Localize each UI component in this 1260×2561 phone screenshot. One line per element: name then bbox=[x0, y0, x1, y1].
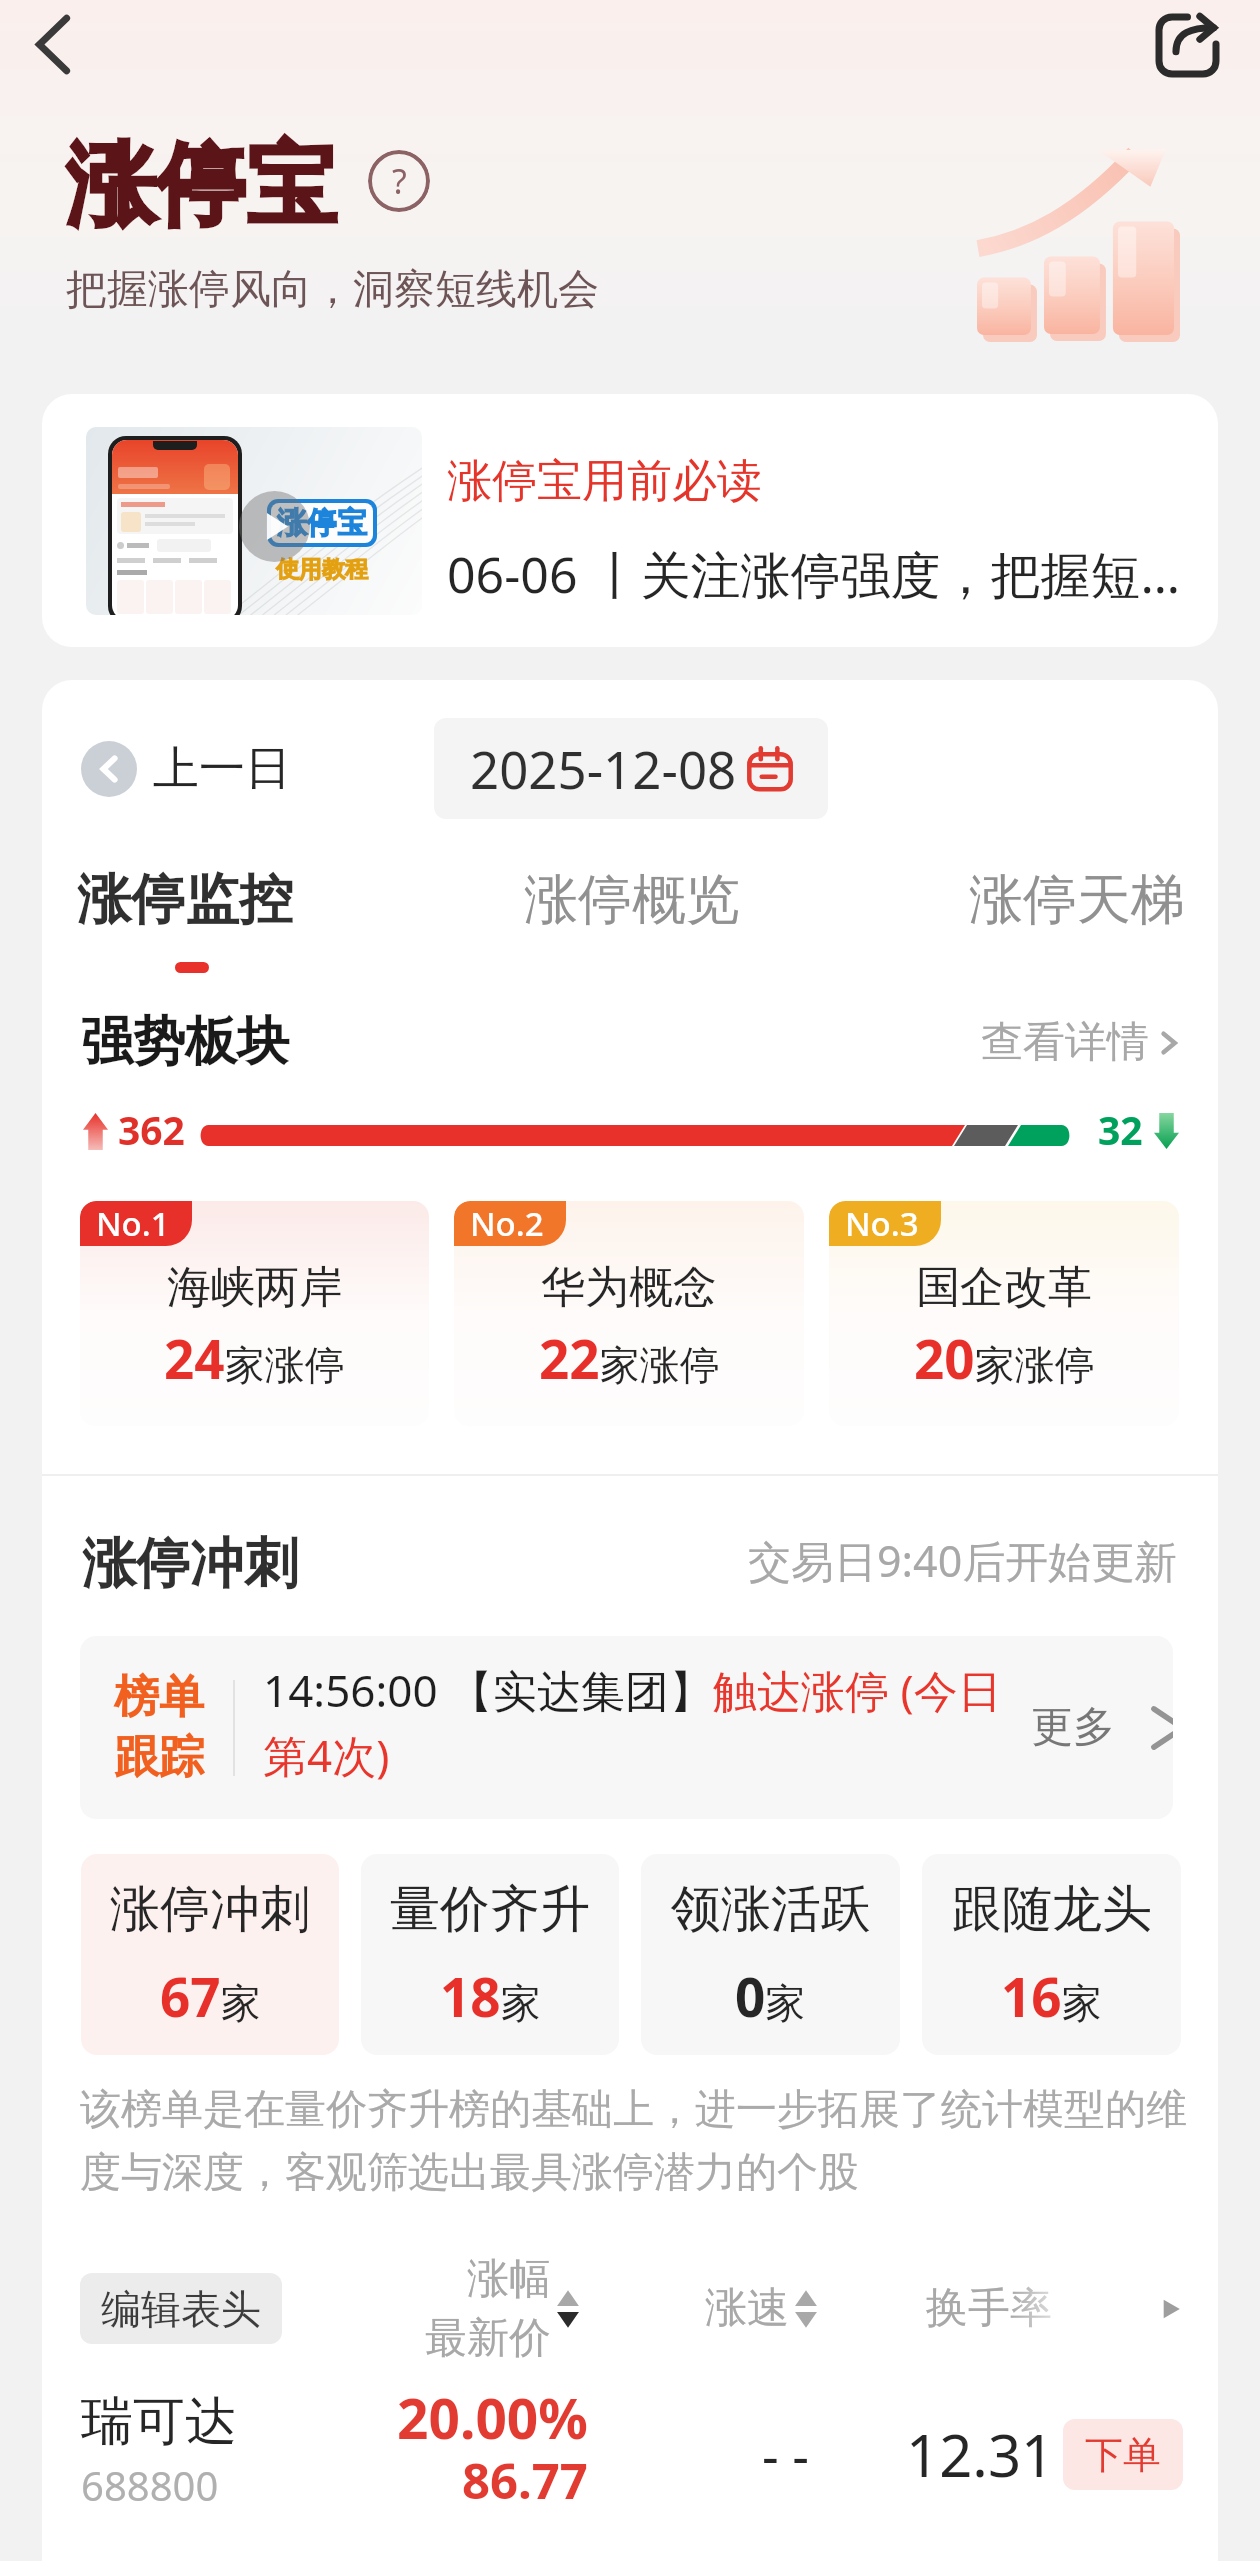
staticText: No.2 bbox=[470, 1201, 544, 1246]
staticText: 32 bbox=[1098, 1103, 1143, 1156]
staticText: 涨停冲刺 bbox=[82, 1530, 298, 1598]
staticText: 查看详情 bbox=[981, 1016, 1149, 1069]
staticText: 涨停冲刺 bbox=[110, 1878, 310, 1941]
staticText: 榜单 bbox=[114, 1669, 204, 1726]
staticText: 换手率 bbox=[926, 2282, 1052, 2335]
button[interactable]: 涨停冲刺 bbox=[81, 1854, 339, 2055]
staticText: 2025-12-08 bbox=[470, 734, 737, 803]
staticText: 20.00% bbox=[397, 2380, 588, 2455]
button[interactable]: 查看详情 bbox=[981, 1016, 1185, 1069]
button[interactable]: 涨停概览 bbox=[447, 866, 816, 971]
staticText: 量价齐升 bbox=[390, 1878, 590, 1941]
staticText: No.1 bbox=[96, 1201, 170, 1246]
button[interactable]: 涨停监控 bbox=[77, 866, 447, 973]
staticText: 20家涨停 bbox=[914, 1322, 1095, 1394]
staticText: 12.31 bbox=[906, 2415, 1055, 2494]
staticText: 688800 bbox=[81, 2458, 219, 2512]
staticText: 华为概念 bbox=[541, 1260, 717, 1315]
staticText: 涨停宝用前必读 bbox=[447, 453, 762, 510]
staticText: 交易日9:40后开始更新 bbox=[748, 1531, 1178, 1590]
staticText: 海峡两岸 bbox=[167, 1260, 343, 1315]
staticText: 把握涨停风向，洞察短线机会 bbox=[66, 264, 599, 316]
staticText: 瑞可达 bbox=[81, 2389, 237, 2455]
button[interactable]: No.3 bbox=[829, 1201, 1179, 1426]
button[interactable]: 瑞可达 bbox=[42, 2382, 1218, 2527]
button[interactable]: No.2 bbox=[454, 1201, 804, 1426]
staticText: 0家 bbox=[735, 1960, 806, 2032]
staticText: No.3 bbox=[845, 1201, 919, 1246]
button[interactable]: More columns bbox=[1159, 2296, 1185, 2322]
staticText: 国企改革 bbox=[916, 1260, 1092, 1315]
staticText: 跟踪 bbox=[114, 1729, 204, 1786]
staticText: 涨幅 bbox=[467, 2253, 551, 2306]
staticText: 22家涨停 bbox=[539, 1322, 720, 1394]
staticText: 使用教程 bbox=[276, 555, 368, 584]
staticText: 领涨活跃 bbox=[671, 1878, 871, 1941]
staticText: 编辑表头 bbox=[101, 2284, 261, 2334]
button[interactable]: 领涨活跃 bbox=[641, 1854, 900, 2055]
button[interactable]: 量价齐升 bbox=[361, 1854, 619, 2055]
button[interactable]: 涨停天梯 bbox=[816, 866, 1185, 971]
staticText: 该榜单是在量价齐升榜的基础上，进一步拓展了统计模型的维度与深度，客观筛选出最具涨… bbox=[80, 2084, 1188, 2198]
staticText: 更多 bbox=[1031, 1701, 1115, 1754]
staticText: 涨停宝 bbox=[277, 504, 367, 542]
staticText: ? bbox=[392, 158, 407, 204]
staticText: 16家 bbox=[1001, 1960, 1102, 2032]
button[interactable]: No.1 bbox=[80, 1201, 429, 1426]
button[interactable]: Previous day bbox=[81, 741, 137, 797]
button[interactable]: 换手率 bbox=[926, 2282, 1052, 2335]
button[interactable]: 下单 bbox=[1063, 2419, 1183, 2490]
button[interactable]: 涨停宝 bbox=[42, 394, 1218, 647]
button[interactable]: Help bbox=[368, 150, 430, 212]
staticText: 涨停宝 bbox=[66, 129, 336, 242]
button[interactable]: Share bbox=[1141, 0, 1233, 91]
staticText: 362 bbox=[118, 1103, 185, 1156]
button[interactable]: 涨幅 bbox=[425, 2253, 581, 2365]
staticText: 67家 bbox=[160, 1960, 261, 2032]
button[interactable]: Play video bbox=[239, 491, 310, 562]
staticText: 涨速 bbox=[705, 2282, 789, 2335]
staticText: 18家 bbox=[440, 1960, 541, 2032]
staticText: 涨停天梯 bbox=[969, 866, 1185, 934]
staticText: 14:56:00 【实达集团】触达涨停 (今日第4次) bbox=[263, 1660, 1008, 1785]
staticText: 最新价 bbox=[425, 2312, 551, 2365]
staticText: 06-06 丨关注涨停强度，把握短… bbox=[447, 540, 1181, 608]
button[interactable]: 编辑表头 bbox=[80, 2273, 282, 2344]
button[interactable]: 2025-12-08 bbox=[434, 718, 828, 819]
staticText: 上一日 bbox=[153, 740, 291, 798]
staticText: 强势板块 bbox=[81, 1009, 289, 1075]
staticText: 下单 bbox=[1085, 2431, 1161, 2479]
staticText: 涨停概览 bbox=[524, 866, 740, 934]
staticText: - - bbox=[762, 2419, 810, 2490]
button[interactable]: 涨速 bbox=[705, 2282, 819, 2335]
staticText: 86.77 bbox=[462, 2447, 588, 2514]
button[interactable]: 榜单 bbox=[80, 1636, 1173, 1819]
button[interactable]: Back bbox=[7, 0, 99, 90]
staticText: 跟随龙头 bbox=[952, 1878, 1152, 1941]
staticText: 涨停监控 bbox=[77, 866, 293, 934]
button[interactable]: 跟随龙头 bbox=[922, 1854, 1181, 2055]
staticText: 24家涨停 bbox=[164, 1322, 345, 1394]
